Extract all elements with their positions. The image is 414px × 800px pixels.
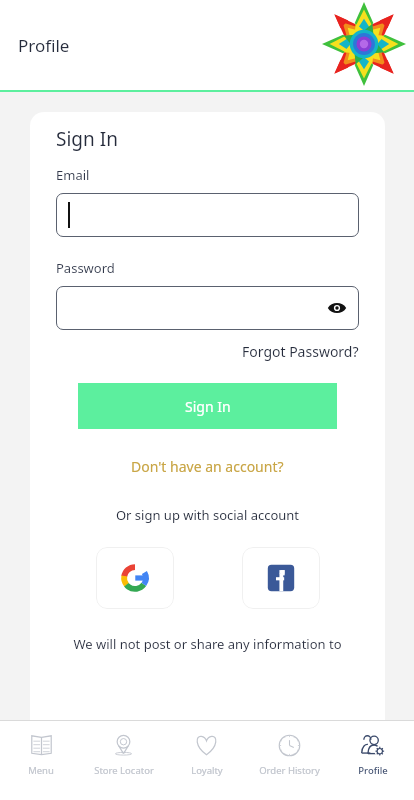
staticText: Or sign up with social account [56,506,359,524]
staticText: Forgot Password? [242,342,359,361]
staticText: Profile [18,34,70,57]
staticText: Menu [28,764,54,777]
button[interactable]: Store Locator [82,721,165,800]
button[interactable]: Sign In [78,383,337,429]
staticText: Order History [259,764,320,777]
button[interactable]: Forgot Password? [242,342,359,361]
staticText: Profile [358,764,388,777]
staticText: Password [56,259,115,277]
staticText: Store Locator [94,764,154,777]
other: Logo [322,2,406,86]
button[interactable]: Don't have an account? [131,457,284,476]
staticText: Sign In [56,126,118,152]
button[interactable]: Sign in with Facebook [242,547,320,609]
staticText: Email [56,166,90,184]
button[interactable]: Loyalty [165,721,248,800]
button[interactable]: Profile [331,721,414,800]
staticText: Don't have an account? [131,457,284,476]
staticText: Loyalty [191,764,223,777]
button[interactable]: Menu [0,721,82,800]
staticText: Sign In [185,397,231,416]
button[interactable] [56,193,359,237]
staticText: We will not post or share any informatio… [56,635,359,653]
button[interactable]: Order History [248,721,331,800]
other: Show password [327,298,347,318]
button[interactable]: Sign in with Google [96,547,174,609]
button[interactable]: Show password [56,286,359,330]
